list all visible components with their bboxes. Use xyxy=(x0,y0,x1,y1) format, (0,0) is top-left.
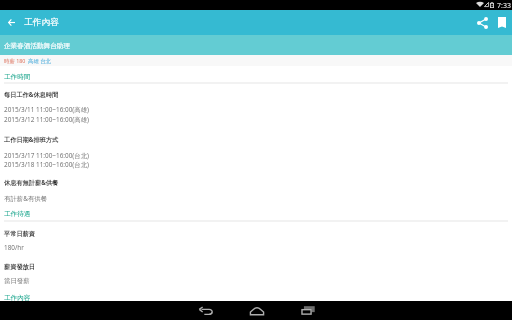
staticText: 時薪 180 xyxy=(4,57,26,64)
staticText: 休息有無計薪&供餐 xyxy=(4,178,59,186)
staticText: 2015/3/12 11:00~16:00(高雄) xyxy=(4,115,89,124)
button[interactable]: Back xyxy=(187,301,224,320)
staticText: 平常日薪資 xyxy=(4,230,35,238)
button[interactable]: 企業春酒活動舞台助理 xyxy=(0,35,512,55)
button[interactable]: Recent apps xyxy=(289,301,326,320)
staticText: 2015/3/11 11:00~16:00(高雄) xyxy=(4,105,89,114)
staticText: 每日工作&休息時間 xyxy=(4,90,59,98)
staticText: 2015/3/18 11:00~16:00(台北) xyxy=(4,160,89,169)
staticText: 180/hr xyxy=(4,243,24,252)
staticText: 當日發薪 xyxy=(4,277,30,285)
staticText: 工作日期&排班方式 xyxy=(4,135,59,143)
staticText: 工作內容 xyxy=(24,17,59,28)
staticText: 2015/3/17 11:00~16:00(台北) xyxy=(4,151,89,160)
staticText: 7:33 xyxy=(497,1,511,11)
button[interactable]: Bookmark xyxy=(493,10,511,35)
button[interactable]: Navigate up xyxy=(0,10,22,35)
staticText: 薪資發放日 xyxy=(4,263,35,271)
button[interactable]: Home xyxy=(238,301,275,320)
staticText: 高雄 台北 xyxy=(28,57,51,64)
button[interactable]: Share xyxy=(472,10,493,35)
staticText: 工作待遇 xyxy=(4,210,31,218)
staticText: 工作時間 xyxy=(4,73,31,81)
staticText: 企業春酒活動舞台助理 xyxy=(4,42,70,50)
staticText: 有計薪&有供餐 xyxy=(4,194,48,203)
staticText: 工作內容 xyxy=(4,294,31,302)
